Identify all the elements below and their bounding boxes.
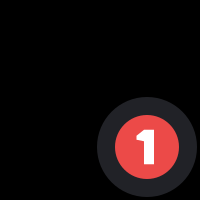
button[interactable]: 1	[97, 97, 197, 197]
